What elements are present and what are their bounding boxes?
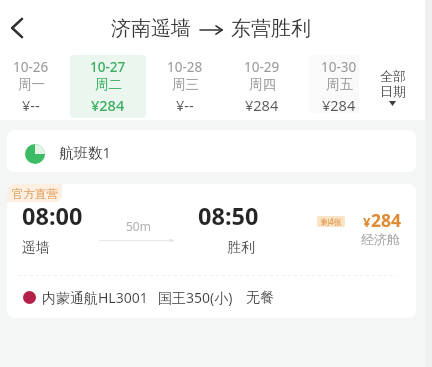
button[interactable]: 10-26 — [0, 48, 69, 120]
button[interactable]: 官方直营 — [7, 184, 416, 318]
staticText: ¥-- — [22, 95, 40, 115]
staticText: 国王350(小) — [158, 288, 233, 307]
staticText: 10-30 — [321, 58, 357, 76]
staticText: 10-27 — [90, 58, 126, 76]
staticText: ¥284 — [91, 95, 125, 115]
staticText: ¥284 — [322, 95, 356, 115]
button[interactable]: 10-30 — [300, 48, 377, 120]
staticText: 284 — [371, 208, 402, 232]
staticText: 剩4张 — [321, 216, 342, 227]
staticText: 官方直营 — [12, 187, 58, 201]
staticText: 遥墙 — [22, 239, 50, 257]
button[interactable]: 航班数1 — [7, 130, 416, 172]
button[interactable]: 10-29 — [223, 48, 300, 120]
staticText: 日期 — [380, 83, 406, 99]
staticText: 周三 — [172, 76, 199, 93]
staticText: 10-26 — [13, 58, 49, 76]
staticText: 胜利 — [227, 239, 255, 257]
staticText: 10-28 — [167, 58, 203, 76]
staticText: 08:00 — [22, 200, 83, 232]
staticText: 济南遥墙 — [111, 16, 191, 41]
staticText: 10-29 — [244, 58, 280, 76]
staticText: 内蒙通航HL3001 — [42, 288, 148, 307]
staticText: 东营胜利 — [231, 16, 311, 41]
staticText: 周一 — [18, 76, 45, 93]
staticText: ¥ — [363, 213, 371, 231]
button[interactable]: 10-27 — [69, 48, 146, 120]
staticText: 08:50 — [198, 200, 259, 232]
staticText: ¥284 — [245, 95, 279, 115]
staticText: 无餐 — [246, 289, 274, 307]
staticText: 全部 — [380, 68, 406, 84]
staticText: 周五 — [326, 76, 353, 93]
staticText: 周二 — [95, 76, 122, 93]
staticText: 航班数1 — [59, 142, 111, 162]
staticText: ¥-- — [176, 95, 194, 115]
staticText: 经济舱 — [361, 231, 400, 247]
button[interactable]: Back — [0, 11, 34, 45]
staticText: 50m — [126, 218, 151, 234]
button[interactable]: 10-28 — [146, 48, 223, 120]
button[interactable]: 全部 — [359, 48, 424, 120]
staticText: 周四 — [249, 76, 276, 93]
